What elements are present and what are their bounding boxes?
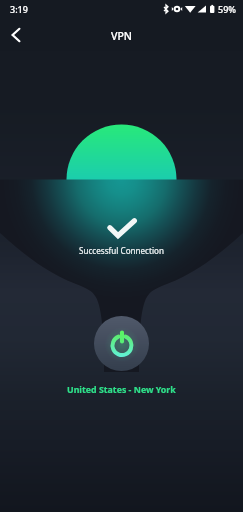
staticText: Successful Connection — [79, 245, 164, 256]
button[interactable]: Back — [0, 19, 32, 51]
button[interactable]: Power — [94, 316, 149, 371]
staticText: VPN — [111, 29, 133, 43]
staticText: United States - New York — [67, 384, 176, 396]
staticText: 59% — [218, 3, 236, 15]
staticText: 3:19 — [10, 3, 28, 15]
